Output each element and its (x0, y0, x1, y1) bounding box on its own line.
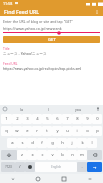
staticText: Enter the URL of blog or site and tap "G… (3, 19, 73, 24)
staticText: h (61, 140, 64, 146)
staticText: n (71, 152, 74, 158)
button[interactable]: e (22, 126, 32, 136)
staticText: la (20, 107, 23, 112)
button[interactable]: Space (35, 162, 77, 172)
button[interactable]: d (27, 138, 37, 148)
button[interactable]: m (77, 150, 87, 160)
button[interactable]: 1 (1, 114, 12, 124)
button[interactable]: Recents (51, 174, 77, 183)
staticText: 1 (5, 116, 8, 122)
button[interactable]: x (27, 150, 37, 160)
button[interactable]: Emoji (25, 162, 35, 172)
staticText: 8 (76, 116, 79, 122)
staticText: w (15, 128, 19, 134)
staticText: https://news.yahoo.co.jp/rss/topics/top-… (3, 66, 82, 71)
button[interactable]: 6 (52, 114, 62, 124)
staticText: b (61, 152, 64, 158)
staticText: 3 (26, 116, 29, 122)
button[interactable]: y (52, 126, 62, 136)
staticText: 6 (56, 116, 59, 122)
button[interactable]: j (67, 138, 77, 148)
button[interactable]: r (32, 126, 42, 136)
staticText: o (86, 128, 89, 134)
staticText: g (51, 140, 54, 146)
staticText: 0 (96, 116, 99, 122)
button[interactable]: v (47, 150, 57, 160)
button[interactable]: g (47, 138, 57, 148)
button[interactable]: q (1, 126, 12, 136)
staticText: x (31, 152, 34, 158)
staticText: a (11, 140, 14, 146)
button[interactable]: Hide keyboard (77, 174, 103, 183)
staticText: q (5, 128, 8, 134)
button[interactable]: k (77, 138, 87, 148)
button[interactable]: Home (25, 174, 51, 183)
button[interactable]: n (67, 150, 77, 160)
staticText: 4 (36, 116, 39, 122)
button[interactable]: w (12, 126, 22, 136)
button[interactable]: h (57, 138, 67, 148)
button[interactable]: 5 (42, 114, 52, 124)
button[interactable]: s (17, 138, 27, 148)
staticText: v (51, 152, 54, 158)
button[interactable]: ?123 (1, 162, 15, 172)
staticText: Find Feed URL (4, 8, 40, 15)
staticText: https://www.yahoo.co.jp/newsrank (3, 26, 62, 31)
button[interactable]: Clipboard (2, 106, 8, 112)
button[interactable]: 8 (72, 114, 82, 124)
staticText: d (31, 140, 34, 146)
staticText: . (81, 164, 83, 170)
staticText: 7 (66, 116, 69, 122)
button[interactable]: u (62, 126, 72, 136)
staticText: l (91, 140, 93, 146)
staticText: ニュース - Yahoo!ニュース (3, 51, 47, 56)
button[interactable]: / (15, 162, 25, 172)
staticText: 5 (46, 116, 49, 122)
button[interactable]: Back (0, 174, 25, 183)
button[interactable]: Backspace (87, 150, 102, 160)
button[interactable]: t (42, 126, 52, 136)
button[interactable]: f (37, 138, 47, 148)
staticText: GET (48, 37, 56, 43)
staticText: j (71, 140, 73, 146)
button[interactable]: b (57, 150, 67, 160)
button[interactable]: 4 (32, 114, 42, 124)
staticText: p (96, 128, 99, 134)
button[interactable]: 3 (22, 114, 32, 124)
button[interactable]: l (87, 138, 97, 148)
staticText: ?123 (5, 165, 12, 169)
button[interactable]: i (72, 126, 82, 136)
button[interactable]: 2 (12, 114, 22, 124)
staticText: i (76, 128, 78, 134)
staticText: 9 (86, 116, 89, 122)
button[interactable]: GET (3, 36, 100, 43)
button[interactable]: More options (93, 8, 101, 16)
button[interactable]: Shift (1, 150, 17, 160)
staticText: u (66, 128, 69, 134)
staticText: e (26, 128, 29, 134)
button[interactable]: Go (87, 162, 102, 172)
button[interactable]: p (92, 126, 102, 136)
button[interactable]: c (37, 150, 47, 160)
staticText: c (41, 152, 44, 158)
staticText: l (48, 107, 49, 112)
button[interactable]: 7 (62, 114, 72, 124)
staticText: 2 (16, 116, 19, 122)
staticText: t (46, 128, 48, 134)
staticText: s (21, 140, 24, 146)
staticText: f (41, 140, 43, 146)
button[interactable]: o (82, 126, 92, 136)
button[interactable]: 9 (82, 114, 92, 124)
button[interactable]: Voice input (95, 106, 101, 112)
staticText: you (75, 107, 82, 112)
button[interactable]: z (17, 150, 27, 160)
staticText: r (36, 128, 38, 134)
staticText: k (81, 140, 84, 146)
staticText: English (51, 165, 62, 169)
button[interactable]: 0 (92, 114, 102, 124)
staticText: Title (3, 46, 10, 50)
staticText: m (80, 152, 84, 158)
button[interactable]: a (7, 138, 17, 148)
staticText: 11:58 (3, 1, 13, 6)
